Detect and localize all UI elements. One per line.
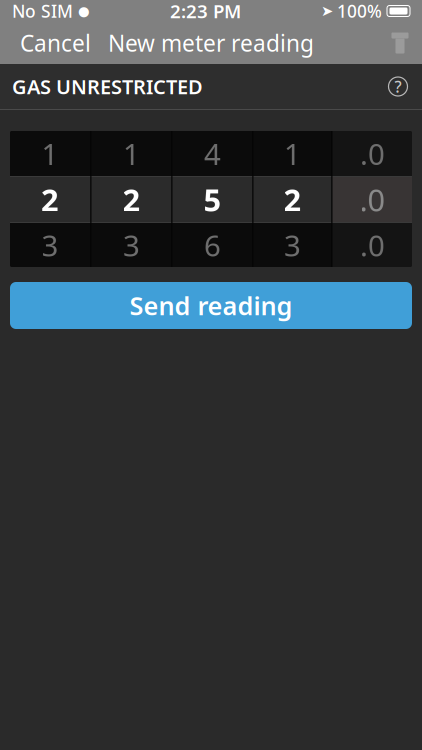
staticText: No SIM	[12, 0, 73, 22]
button[interactable]: Toggle flashlight	[378, 22, 422, 64]
staticText: 2:23 PM	[170, 0, 241, 23]
staticText: 1	[284, 134, 301, 173]
staticText: Cancel	[20, 28, 91, 58]
button[interactable]: Cancel	[0, 22, 111, 64]
staticText: 100%	[337, 0, 382, 22]
staticText: 6	[204, 225, 221, 264]
staticText: ●	[78, 3, 90, 18]
staticText: 3	[284, 225, 301, 264]
staticText: 4	[204, 134, 221, 173]
staticText: .0	[359, 179, 385, 220]
staticText: ?	[394, 76, 401, 97]
staticText: 1	[123, 134, 140, 173]
staticText: 1	[41, 134, 58, 173]
staticText: .0	[360, 225, 385, 264]
staticText: .0	[360, 134, 385, 173]
staticText: 3	[41, 225, 58, 264]
staticText: 3	[123, 225, 140, 264]
staticText: 2	[41, 179, 59, 220]
staticText: 2	[283, 179, 301, 220]
button[interactable]: Send reading	[10, 282, 412, 329]
staticText: New meter reading	[108, 28, 314, 58]
staticText: 5	[203, 179, 221, 220]
staticText: GAS UNRESTRICTED	[12, 73, 203, 100]
staticText: 2	[122, 179, 140, 220]
staticText: Send reading	[129, 289, 292, 322]
staticText: ➤	[321, 3, 333, 19]
button[interactable]: Help	[381, 69, 415, 103]
